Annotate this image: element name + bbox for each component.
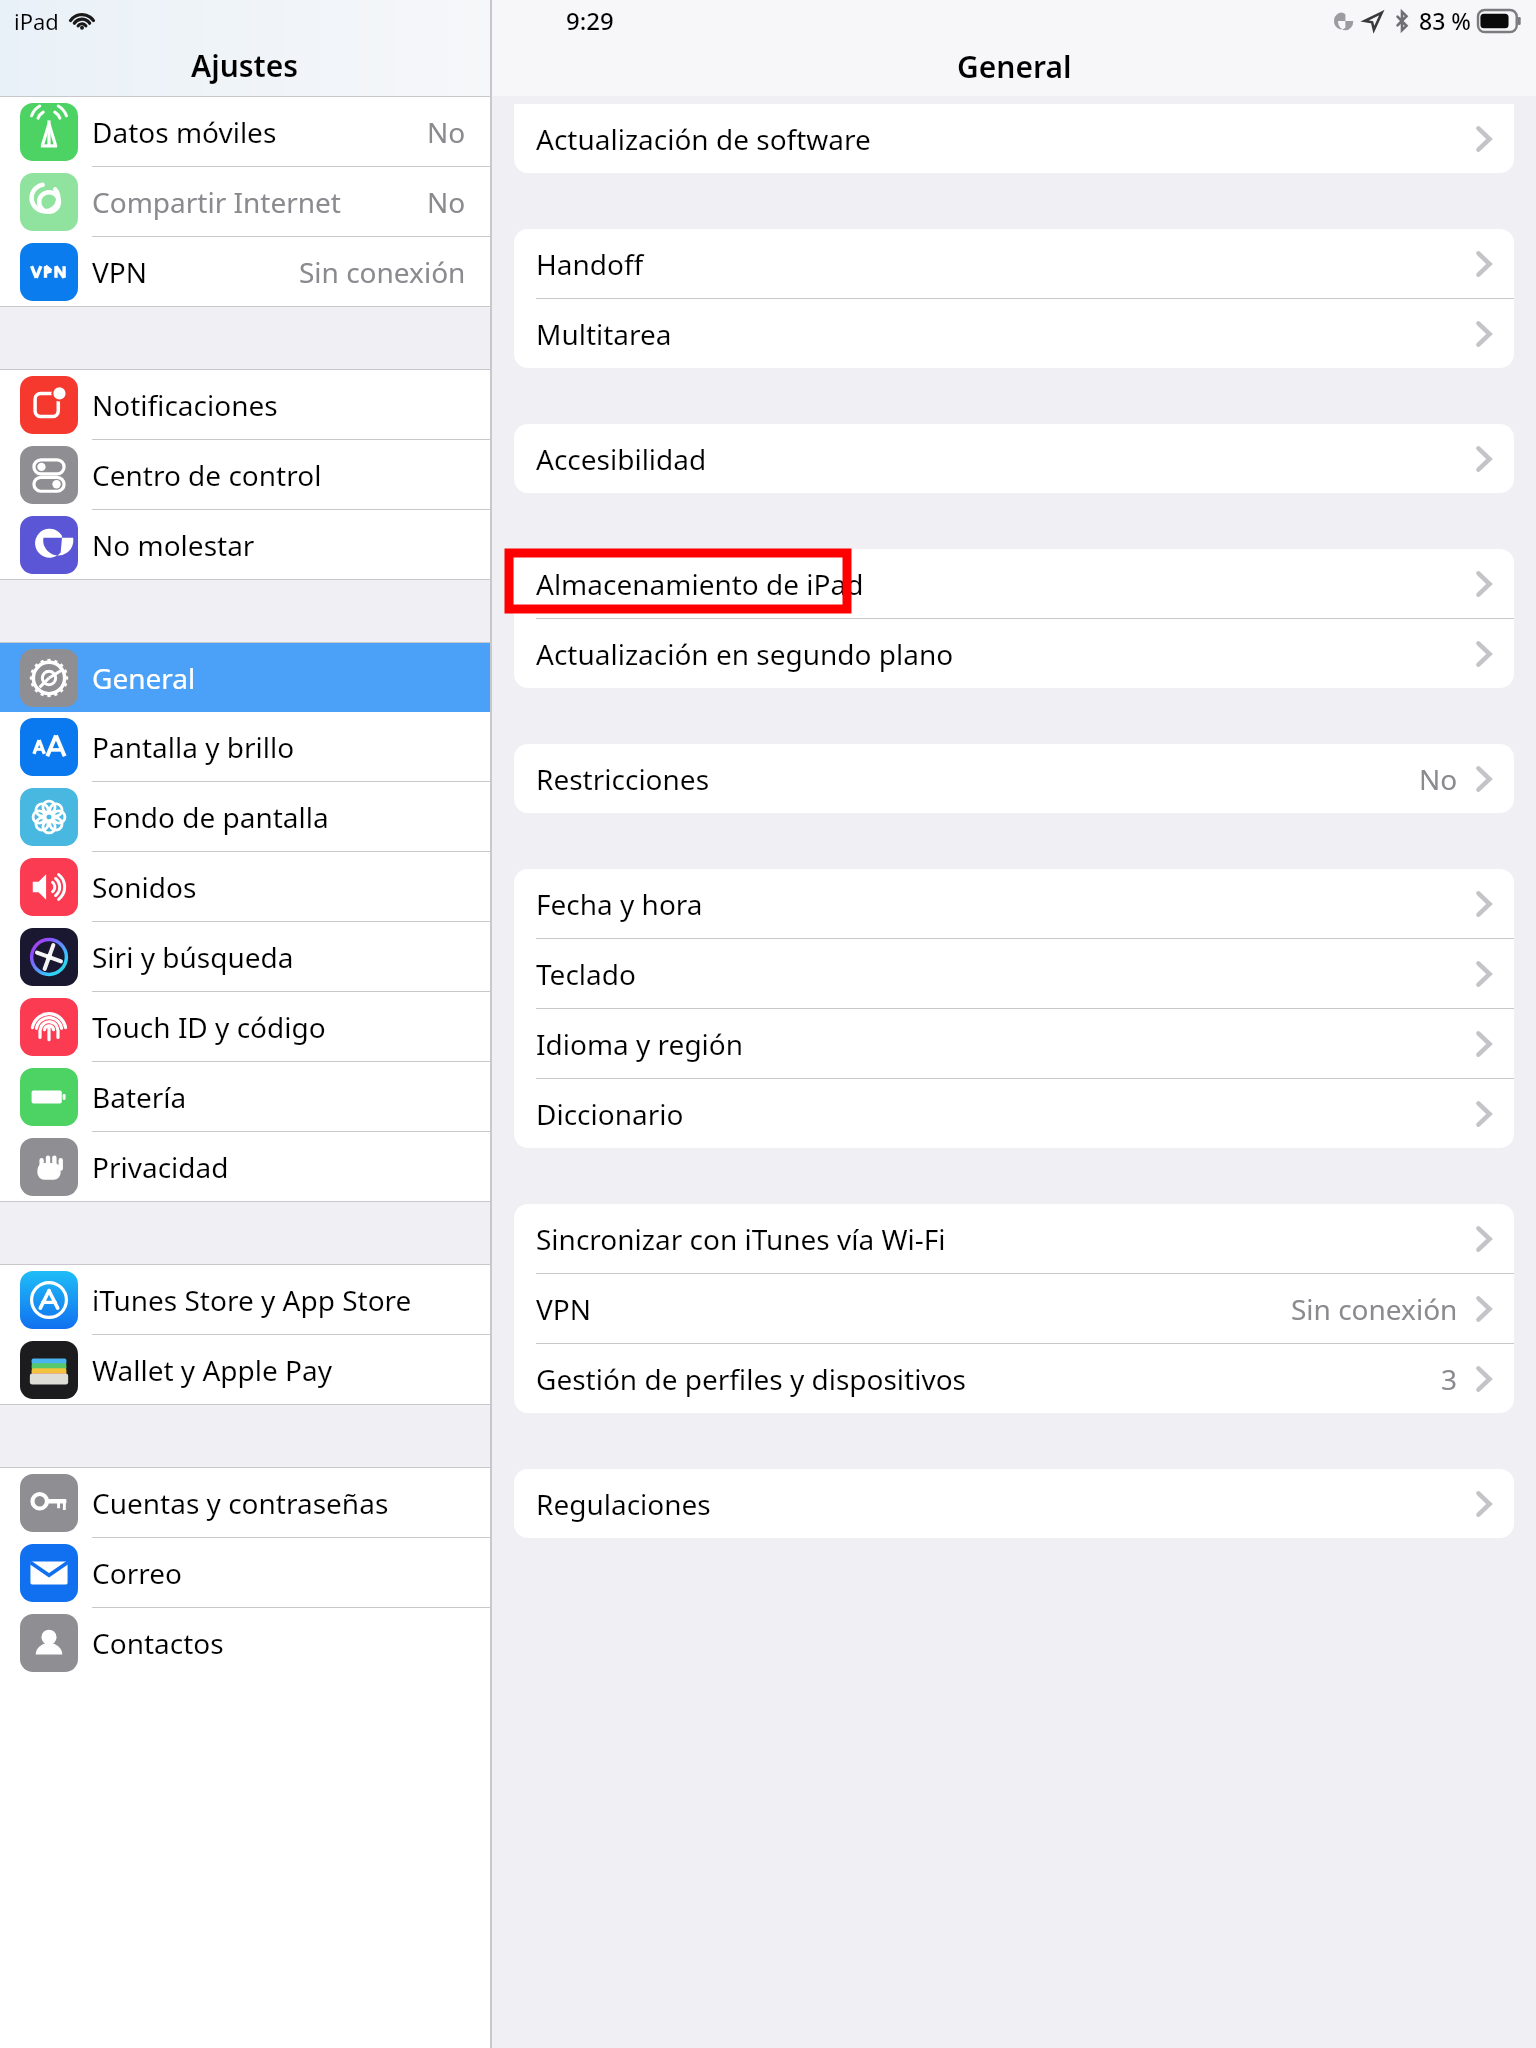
button[interactable]: iTunes Store y App Store (0, 1265, 490, 1334)
staticText: Gestión de perfiles y dispositivos (536, 1360, 966, 1398)
button[interactable]: Multitarea (514, 299, 1514, 368)
button[interactable]: Siri y búsqueda (0, 922, 490, 991)
staticText: Correo (92, 1554, 182, 1592)
button[interactable]: Centro de control (0, 440, 490, 509)
staticText: Actualización en segundo plano (536, 635, 954, 673)
staticText: Teclado (536, 955, 636, 993)
staticText: Wallet y Apple Pay (92, 1351, 332, 1389)
button[interactable]: No molestar (0, 510, 490, 579)
staticText: Touch ID y código (92, 1008, 326, 1046)
staticText: Accesibilidad (536, 440, 707, 478)
staticText: Pantalla y brillo (92, 728, 295, 766)
staticText: Siri y búsqueda (92, 938, 294, 976)
staticText: Sin conexión (1291, 1290, 1458, 1328)
staticText: Regulaciones (536, 1485, 711, 1523)
staticText: Privacidad (92, 1148, 229, 1186)
staticText: Sincronizar con iTunes vía Wi‑Fi (536, 1220, 946, 1258)
staticText: General (957, 46, 1072, 87)
staticText: Fecha y hora (536, 885, 703, 923)
button[interactable]: Correo (0, 1538, 490, 1607)
button[interactable]: Restricciones (514, 744, 1514, 813)
staticText: Cuentas y contraseñas (92, 1484, 389, 1522)
staticText: VPN (92, 253, 148, 291)
staticText: Fondo de pantalla (92, 798, 329, 836)
staticText: VPN (536, 1290, 592, 1328)
staticText: 83 % (1419, 5, 1471, 36)
button[interactable]: Batería (0, 1062, 490, 1131)
button[interactable]: Wallet y Apple Pay (0, 1335, 490, 1404)
staticText: Contactos (92, 1624, 224, 1662)
button[interactable]: General (0, 643, 490, 712)
staticText: iPad (14, 6, 59, 36)
button[interactable]: Handoff (514, 229, 1514, 298)
button[interactable]: Fecha y hora (514, 869, 1514, 938)
button[interactable]: Accesibilidad (514, 424, 1514, 493)
button[interactable]: Contactos (0, 1608, 490, 1677)
button[interactable]: Datos móviles (0, 97, 490, 166)
button[interactable]: Privacidad (0, 1132, 490, 1201)
staticText: Notificaciones (92, 386, 278, 424)
button[interactable]: Touch ID y código (0, 992, 490, 1061)
staticText: Batería (92, 1078, 187, 1116)
staticText: Datos móviles (92, 113, 277, 151)
button[interactable]: Almacenamiento de iPad (514, 549, 1514, 618)
staticText: No molestar (92, 526, 255, 564)
staticText: No (427, 183, 466, 221)
staticText: iTunes Store y App Store (92, 1281, 412, 1319)
button[interactable]: Sincronizar con iTunes vía Wi‑Fi (514, 1204, 1514, 1273)
staticText: Diccionario (536, 1095, 684, 1133)
staticText: Sonidos (92, 868, 197, 906)
button[interactable]: VPN (514, 1274, 1514, 1343)
button[interactable]: Pantalla y brillo (0, 712, 490, 781)
staticText: Sin conexión (299, 253, 466, 291)
staticText: No (1419, 760, 1458, 798)
staticText: Restricciones (536, 760, 710, 798)
button[interactable]: Notificaciones (0, 370, 490, 439)
staticText: Multitarea (536, 315, 672, 353)
staticText: Handoff (536, 245, 644, 283)
button[interactable]: Teclado (514, 939, 1514, 1008)
button[interactable]: Sonidos (0, 852, 490, 921)
button[interactable]: Actualización en segundo plano (514, 619, 1514, 688)
staticText: Actualización de software (536, 120, 871, 158)
staticText: Compartir Internet (92, 183, 341, 221)
staticText: 3 (1441, 1360, 1458, 1398)
staticText: General (92, 659, 196, 697)
staticText: 9:29 (566, 4, 614, 37)
staticText: Ajustes (191, 45, 299, 86)
button[interactable]: Gestión de perfiles y dispositivos (514, 1344, 1514, 1413)
button[interactable]: Diccionario (514, 1079, 1514, 1148)
button[interactable]: VPN (0, 237, 490, 306)
staticText: Almacenamiento de iPad (536, 565, 864, 603)
button[interactable]: Idioma y región (514, 1009, 1514, 1078)
button[interactable]: Cuentas y contraseñas (0, 1468, 490, 1537)
button[interactable]: Regulaciones (514, 1469, 1514, 1538)
button[interactable]: Actualización de software (514, 104, 1514, 173)
button[interactable]: Fondo de pantalla (0, 782, 490, 851)
staticText: Idioma y región (536, 1025, 744, 1063)
button[interactable]: Compartir Internet (0, 167, 490, 236)
staticText: No (427, 113, 466, 151)
staticText: Centro de control (92, 456, 322, 494)
